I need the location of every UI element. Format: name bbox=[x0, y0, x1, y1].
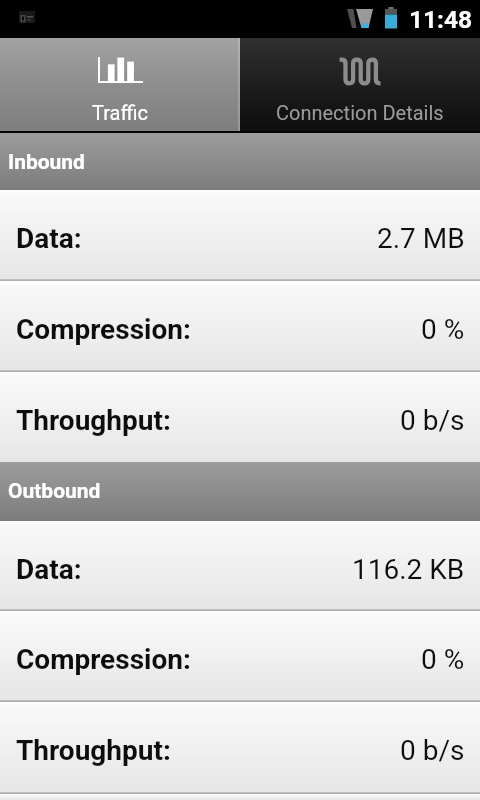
other: Status bar bbox=[0, 0, 480, 38]
staticText: 0 % bbox=[421, 313, 465, 346]
button[interactable]: Connection Details bbox=[240, 38, 480, 131]
staticText: 2.7 MB bbox=[377, 222, 465, 255]
button[interactable]: Throughput: bbox=[0, 372, 480, 462]
staticText: 0 b/s bbox=[400, 734, 465, 767]
staticText: Data: bbox=[16, 222, 82, 255]
staticText: Data: bbox=[16, 553, 82, 586]
button[interactable]: Traffic bbox=[0, 38, 240, 131]
staticText: Connection Details bbox=[276, 101, 444, 124]
button[interactable]: Compression: bbox=[0, 611, 480, 700]
button[interactable]: Compression: bbox=[0, 281, 480, 370]
staticText: Compression: bbox=[16, 643, 191, 676]
staticText: 0 % bbox=[421, 643, 465, 676]
button[interactable] bbox=[0, 794, 480, 800]
staticText: Outbound bbox=[8, 479, 101, 504]
staticText: Throughput: bbox=[16, 404, 171, 437]
staticText: Inbound bbox=[8, 150, 85, 175]
button[interactable]: Data: bbox=[0, 190, 480, 279]
staticText: Throughput: bbox=[16, 734, 171, 767]
staticText: 11:48 bbox=[409, 5, 473, 34]
staticText: 0 b/s bbox=[400, 404, 465, 437]
staticText: Compression: bbox=[16, 313, 191, 346]
staticText: 116.2 KB bbox=[352, 553, 465, 586]
staticText: Traffic bbox=[92, 101, 149, 124]
button[interactable]: Data: bbox=[0, 521, 480, 609]
button[interactable]: Throughput: bbox=[0, 702, 480, 792]
